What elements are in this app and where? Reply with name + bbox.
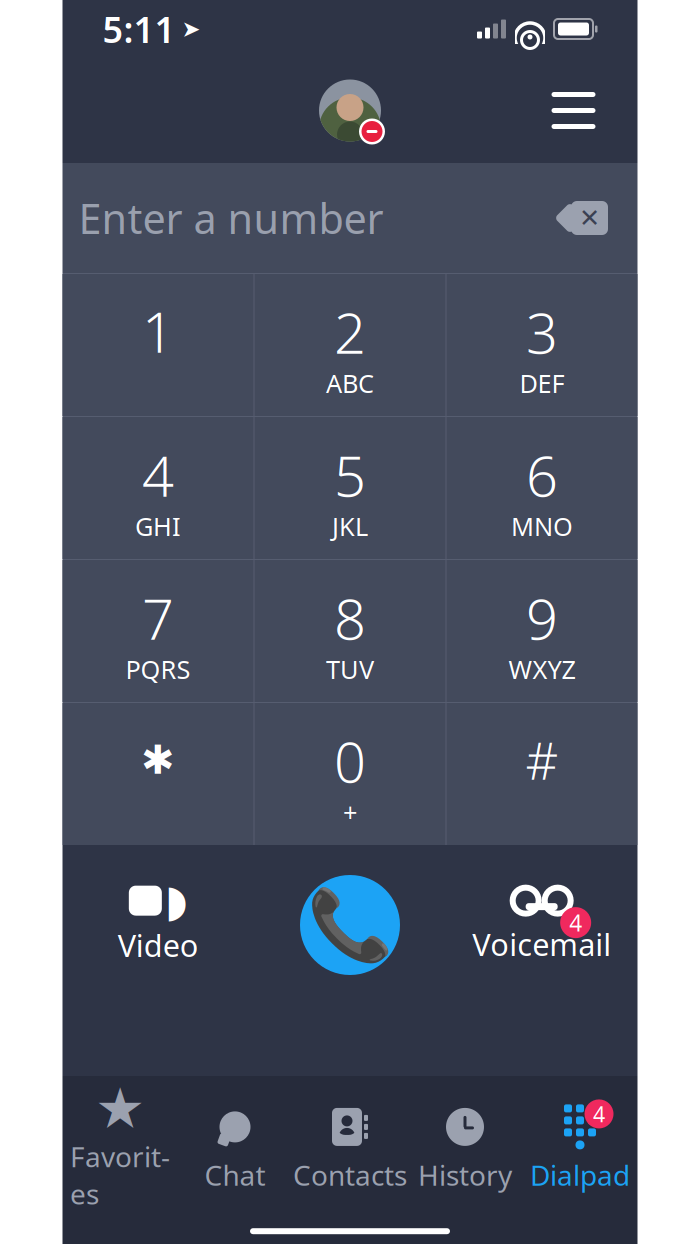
staticText: MNO <box>511 509 573 543</box>
staticText: # <box>525 726 558 794</box>
staticText: Video <box>118 925 199 965</box>
staticText: Dialpad <box>530 1156 630 1194</box>
button[interactable]: 4 <box>62 417 253 559</box>
staticText: 4 <box>569 908 582 938</box>
staticText: 4 <box>142 438 174 512</box>
button[interactable]: 4 <box>522 1096 637 1202</box>
button[interactable]: 3 <box>446 274 637 416</box>
staticText: ABC <box>326 366 374 400</box>
button[interactable]: 2 <box>254 274 445 416</box>
staticText: + <box>343 795 357 829</box>
button[interactable]: Chat <box>177 1096 292 1202</box>
button[interactable]: Delete <box>545 190 621 246</box>
staticText: Voicemail <box>472 924 611 964</box>
button[interactable]: Profile, Do Not Disturb on <box>319 79 381 141</box>
staticText: GHI <box>135 509 181 543</box>
button[interactable]: ✱ <box>62 703 253 845</box>
staticText: PQRS <box>125 652 190 686</box>
button[interactable]: 1 <box>62 274 253 416</box>
staticText: Contacts <box>293 1156 407 1194</box>
staticText: 3 <box>526 295 558 369</box>
staticText: History <box>418 1156 512 1194</box>
button[interactable]: Contacts <box>292 1096 407 1202</box>
staticText: 9 <box>526 581 558 655</box>
staticText: ✱ <box>141 737 175 783</box>
staticText: 1 <box>142 294 174 368</box>
staticText: Chat <box>204 1156 265 1194</box>
staticText: JKL <box>332 509 368 543</box>
button[interactable]: 8 <box>254 560 445 702</box>
staticText: 4 <box>593 1100 605 1128</box>
staticText: ✕ <box>579 204 600 232</box>
staticText: 5 <box>334 438 366 512</box>
button[interactable]: 5 <box>254 417 445 559</box>
staticText: WXYZ <box>508 652 575 686</box>
button[interactable]: History <box>407 1096 522 1202</box>
button[interactable]: Menu <box>537 78 609 143</box>
button[interactable]: 9 <box>446 560 637 702</box>
button[interactable]: ★ <box>62 1078 177 1220</box>
button[interactable]: 7 <box>62 560 253 702</box>
staticText: ➤ <box>181 16 200 42</box>
staticText: ★ <box>95 1076 145 1140</box>
staticText: TUV <box>326 652 374 686</box>
staticText: 5:11 <box>102 5 175 53</box>
button[interactable]: 0 <box>254 703 445 845</box>
staticText: 0 <box>334 724 366 798</box>
button[interactable]: Call <box>254 875 446 975</box>
staticText: 📞 <box>307 885 393 965</box>
button[interactable]: 6 <box>446 417 637 559</box>
staticText: 7 <box>142 581 174 655</box>
staticText: 2 <box>334 295 366 369</box>
button[interactable]: 4 <box>446 886 637 964</box>
button[interactable]: # <box>446 703 637 845</box>
staticText: 6 <box>526 438 558 512</box>
staticText: 8 <box>334 581 366 655</box>
staticText: ◗ <box>165 876 188 926</box>
button[interactable]: ◗ <box>62 885 254 965</box>
staticText: Favorites <box>70 1138 170 1212</box>
staticText: Enter a number <box>78 191 383 245</box>
staticText: DEF <box>519 366 564 400</box>
